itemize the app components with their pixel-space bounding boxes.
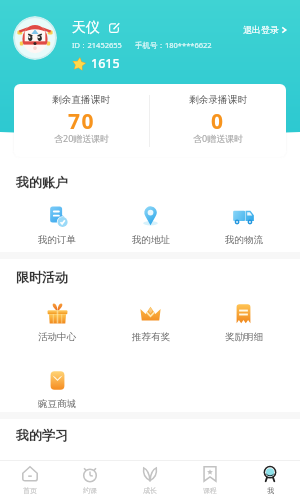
staticText: 约课 — [83, 486, 97, 495]
button[interactable]: 课程 — [180, 460, 240, 500]
staticText: 剩余直播课时 — [52, 94, 111, 106]
button[interactable]: 我 — [240, 460, 300, 500]
staticText: 我的物流 — [225, 234, 263, 246]
staticText: 推荐有奖 — [132, 331, 170, 343]
button[interactable]: 剩余录播课时 — [150, 84, 286, 157]
staticText: 我的学习 — [16, 427, 68, 443]
staticText: 1615 — [91, 55, 120, 72]
staticText: 手机号：180****6622 — [135, 40, 212, 50]
button[interactable]: Avatar — [13, 16, 57, 60]
staticText: 含20赠送课时 — [54, 132, 110, 144]
staticText: 豌豆商城 — [38, 398, 76, 410]
button[interactable]: 退出登录 — [241, 22, 291, 37]
button[interactable]: 剩余直播课时 — [14, 84, 149, 157]
staticText: ID：21452655 — [72, 40, 122, 50]
button[interactable]: 首页 — [0, 460, 60, 500]
button[interactable]: 我的订单 — [10, 205, 104, 246]
button[interactable]: 我的地址 — [104, 205, 197, 246]
staticText: 课程 — [203, 486, 217, 495]
button[interactable]: 奖励明细 — [197, 302, 290, 343]
button[interactable]: 活动中心 — [10, 302, 104, 343]
staticText: 限时活动 — [16, 269, 68, 285]
staticText: 天仪 — [72, 19, 100, 37]
staticText: 首页 — [23, 486, 37, 495]
staticText: 我的账户 — [16, 174, 68, 190]
staticText: 剩余录播课时 — [189, 94, 248, 106]
staticText: 70 — [68, 107, 96, 136]
staticText: 活动中心 — [38, 331, 76, 343]
button[interactable]: 豌豆商城 — [10, 369, 104, 410]
staticText: 成长 — [143, 486, 157, 495]
staticText: 含0赠送课时 — [193, 132, 244, 144]
button[interactable]: 成长 — [120, 460, 180, 500]
staticText: 我 — [267, 486, 274, 495]
staticText: 退出登录 — [243, 24, 279, 35]
staticText: 我的地址 — [132, 234, 170, 246]
staticText: 0 — [211, 107, 225, 136]
button[interactable]: Edit nickname — [108, 22, 120, 34]
staticText: 我的订单 — [38, 234, 76, 246]
staticText: 奖励明细 — [225, 331, 263, 343]
button[interactable]: 我的物流 — [197, 205, 290, 246]
button[interactable]: 推荐有奖 — [104, 302, 197, 343]
button[interactable]: 约课 — [60, 460, 120, 500]
